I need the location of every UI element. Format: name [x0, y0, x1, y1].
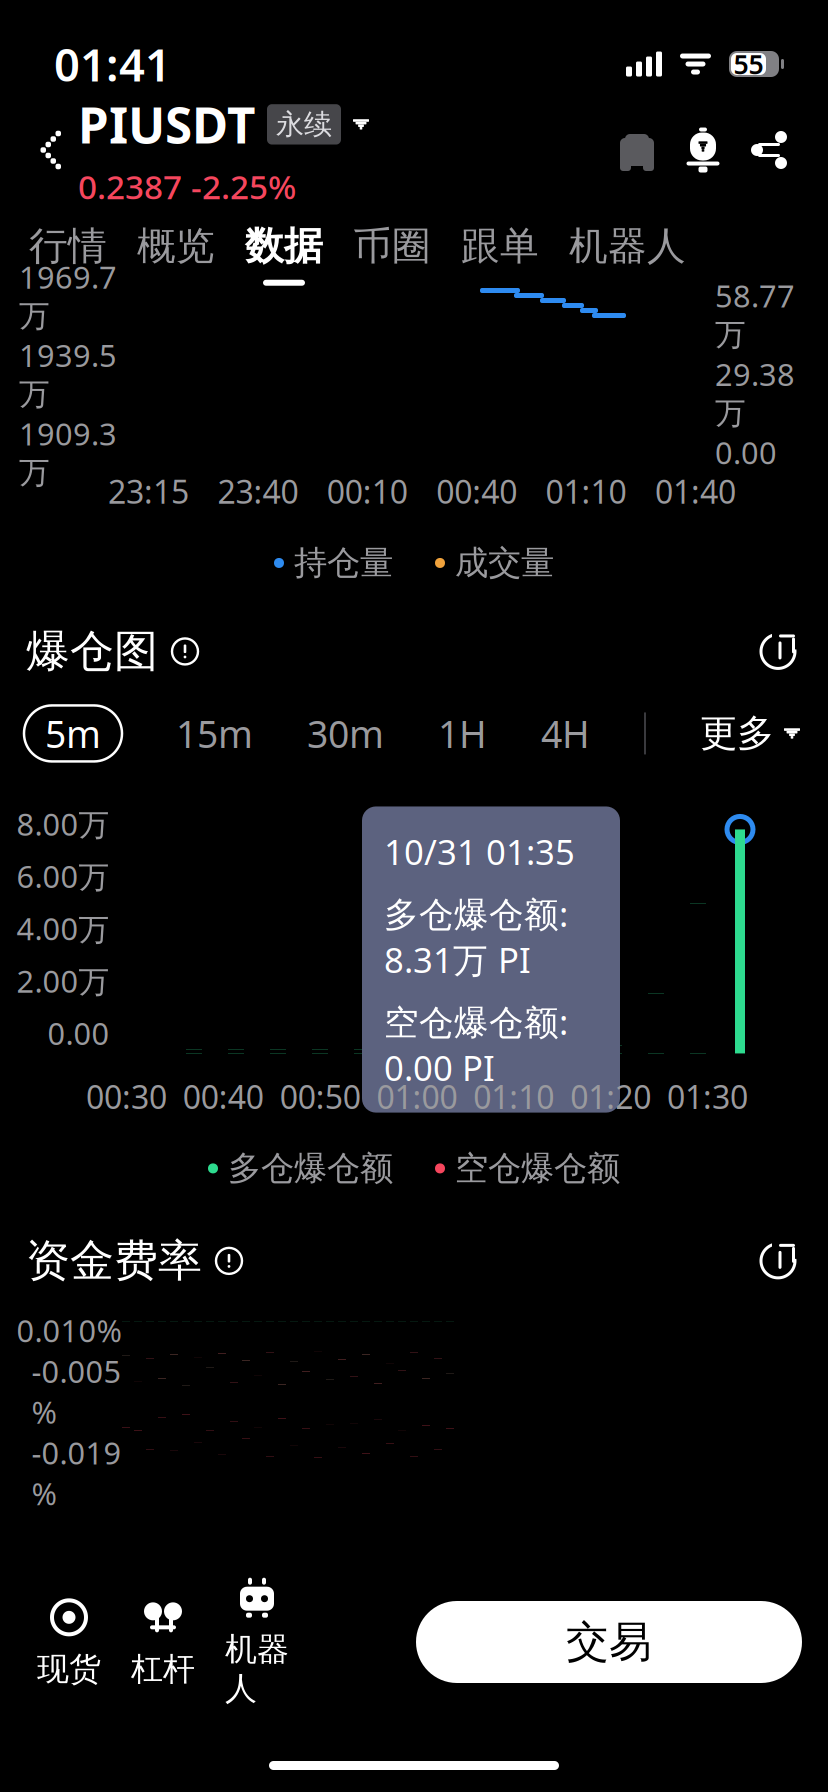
staticText: 跟单 [461, 222, 539, 270]
staticText: 01:30 [667, 1075, 748, 1118]
staticText: 15m [176, 709, 253, 758]
staticText: 交易 [566, 1616, 652, 1668]
staticText: 0.00 [715, 432, 777, 473]
button[interactable]: 30m [307, 709, 384, 758]
staticText: 58.77万 [715, 275, 795, 354]
staticText: 23:15 [108, 470, 189, 512]
staticText: 概览 [137, 222, 215, 270]
button[interactable]: 更多 [700, 710, 800, 756]
staticText: 机器人 [569, 222, 686, 270]
staticText: 1969.7万 [19, 256, 117, 335]
staticText: 6.00万 [16, 856, 109, 896]
staticText: 1909.3万 [19, 413, 117, 492]
staticText: 5m [45, 709, 101, 758]
staticText: 成交量 [455, 542, 554, 583]
staticText: 01:20 [570, 1075, 651, 1118]
staticText: 数据 [245, 222, 323, 270]
staticText: 23:40 [217, 470, 298, 512]
button[interactable]: Open funding rate chart [750, 1233, 806, 1289]
staticText: 机器人 [225, 1630, 289, 1708]
button[interactable]: Favorite [604, 117, 670, 183]
button[interactable]: 跟单 [446, 204, 554, 286]
staticText: 0.00 [47, 1013, 109, 1053]
staticText: 01:40 [655, 470, 736, 512]
staticText: 4H [541, 709, 590, 758]
staticText: 更多 [700, 710, 774, 756]
staticText: 1H [438, 709, 487, 758]
button[interactable]: Price alerts [670, 117, 736, 183]
staticText: 10/31 01:35 [384, 828, 575, 874]
staticText: 29.38万 [715, 354, 795, 432]
button[interactable]: Back [20, 110, 78, 190]
button[interactable]: 1H [438, 709, 487, 758]
staticText: 多仓爆仓额: 8.31万 PI [384, 890, 568, 983]
staticText: PIUSDT [78, 92, 255, 157]
staticText: 空仓爆仓额: 0.00 PI [384, 998, 568, 1091]
button[interactable]: Open full chart [750, 623, 806, 679]
button[interactable]: 概览 [122, 204, 230, 286]
staticText: 行情 [29, 222, 107, 270]
staticText: 1939.5万 [19, 335, 117, 413]
staticText: 0.010% [16, 1310, 121, 1351]
button[interactable]: 行情 [14, 204, 122, 286]
staticText: 00:30 [86, 1075, 167, 1118]
staticText: -0.019% [31, 1432, 121, 1514]
staticText: 00:40 [183, 1075, 264, 1118]
button[interactable]: 5m [24, 705, 122, 761]
staticText: 01:00 [376, 1075, 457, 1118]
button[interactable]: 数据 [230, 204, 338, 286]
staticText: 00:50 [280, 1075, 361, 1118]
staticText: 00:10 [327, 470, 408, 512]
staticText: -0.005% [31, 1351, 121, 1432]
button[interactable]: 交易 [416, 1601, 802, 1683]
staticText: 01:10 [473, 1075, 554, 1118]
staticText: 01:10 [546, 470, 627, 512]
staticText: 空仓爆仓额 [455, 1148, 620, 1189]
staticText: 00:40 [436, 470, 517, 512]
staticText: 持仓量 [294, 542, 393, 583]
staticText: 55 [733, 46, 763, 82]
staticText: 2.00万 [16, 960, 109, 1001]
staticText: 资金费率 [26, 1234, 202, 1288]
button[interactable]: Share [736, 117, 802, 183]
staticText: 现货 [37, 1649, 101, 1689]
staticText: 爆仓图 [26, 624, 158, 678]
button[interactable]: 币圈 [338, 204, 446, 286]
staticText: 8.00万 [16, 803, 109, 844]
staticText: 0.2387 -2.25% [78, 164, 296, 208]
button[interactable]: 4H [541, 709, 590, 758]
button[interactable]: 15m [176, 709, 253, 758]
staticText: 30m [307, 709, 384, 758]
staticText: 杠杆 [131, 1649, 195, 1689]
button[interactable]: 现货 [22, 1595, 116, 1689]
staticText: 永续 [276, 107, 332, 142]
staticText: 01:41 [54, 34, 171, 94]
staticText: 币圈 [353, 222, 431, 270]
staticText: 4.00万 [16, 908, 109, 949]
staticText: 多仓爆仓额 [228, 1148, 393, 1189]
button[interactable]: 机器人 [210, 1576, 304, 1708]
button[interactable]: 机器人 [554, 204, 701, 286]
button[interactable]: 杠杆 [116, 1595, 210, 1689]
